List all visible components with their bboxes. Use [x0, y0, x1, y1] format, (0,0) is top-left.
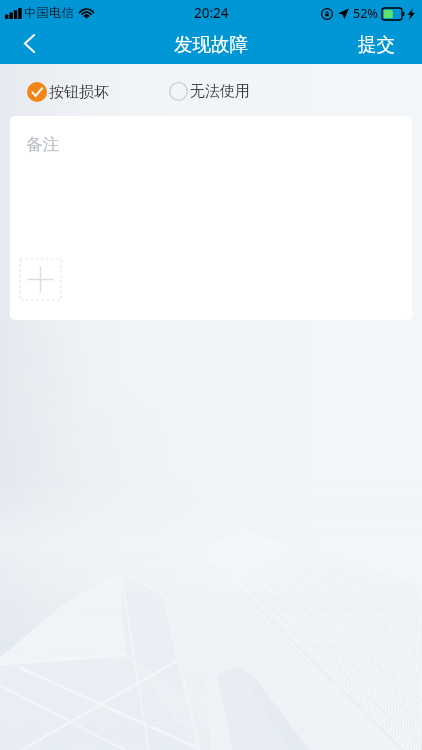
staticText: 中国电信 [24, 5, 74, 21]
staticText: 提交 [358, 33, 395, 56]
button[interactable]: Back [0, 26, 60, 64]
button[interactable]: 无法使用 [169, 82, 250, 101]
staticText: 发现故障 [174, 33, 248, 56]
staticText: 无法使用 [190, 82, 250, 101]
staticText: 52% [353, 5, 378, 22]
staticText: 备注 [26, 134, 59, 155]
staticText: 20:24 [194, 4, 229, 22]
button[interactable]: 提交 [342, 26, 422, 64]
button[interactable]: Add photo [20, 259, 61, 300]
button[interactable]: 按钮损坏 [27, 82, 109, 102]
staticText: 按钮损坏 [49, 83, 109, 102]
